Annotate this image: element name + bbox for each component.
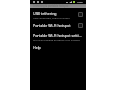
staticText: Portable Wi-Fi hotspot settings [33, 33, 83, 38]
staticText: Tethering & portable hotspot [33, 4, 69, 8]
staticText: Help [33, 45, 41, 50]
staticText: Portable Wi-Fi hotspot [33, 23, 71, 28]
staticText: Set up & manage portable Wi-Fi hotspot [33, 38, 80, 41]
other: Toggle [78, 12, 83, 17]
other: Toggle [78, 23, 83, 28]
button[interactable]: USB tethering [30, 9, 86, 20]
staticText: USB tethering [33, 11, 57, 16]
staticText: 10:48 [77, 1, 83, 4]
button[interactable]: Portable Wi-Fi hotspot [30, 20, 86, 31]
button[interactable]: Help [30, 42, 86, 52]
staticText: USB connected, check to tether [33, 16, 70, 19]
button[interactable]: Portable Wi-Fi hotspot settings [30, 31, 86, 42]
